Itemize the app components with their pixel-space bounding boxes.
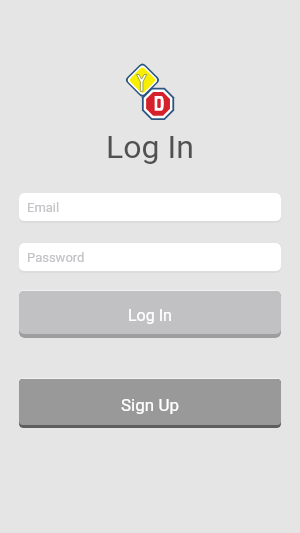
staticText: Sign Up [121,395,179,415]
staticText: Log In [0,128,300,166]
button[interactable]: Password [19,243,281,273]
button[interactable]: Email [19,193,281,223]
staticText: Log In [128,306,172,325]
staticText: Email [27,200,60,215]
button[interactable]: Sign Up [19,378,281,428]
other: App logo [124,62,178,122]
staticText: Password [27,250,85,265]
button[interactable]: Log In [19,290,281,338]
